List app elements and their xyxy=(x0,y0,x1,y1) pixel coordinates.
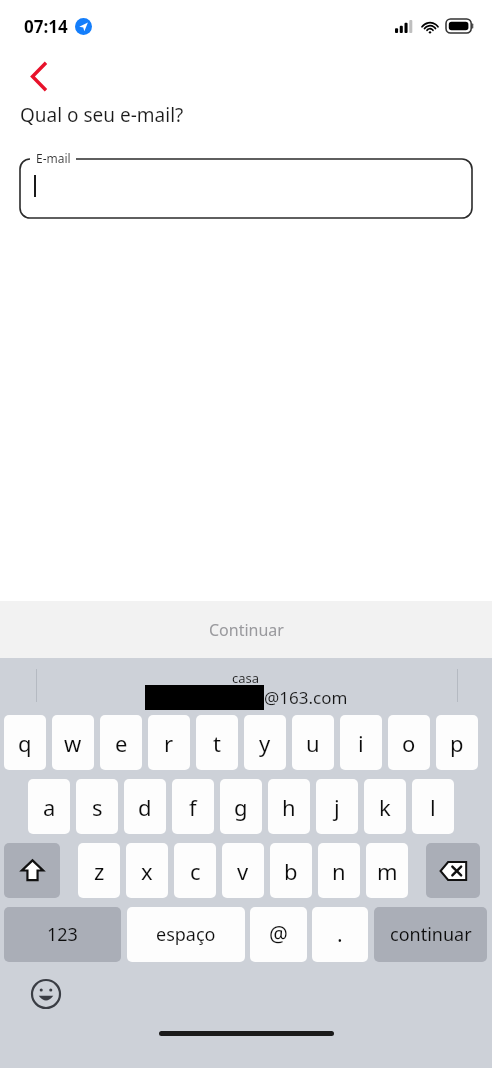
button[interactable]: m xyxy=(366,843,408,898)
button[interactable]: . xyxy=(312,907,368,962)
staticText: n xyxy=(332,856,346,886)
button[interactable]: y xyxy=(244,715,286,770)
staticText: E-mail xyxy=(36,150,71,166)
button[interactable]: t xyxy=(196,715,238,770)
button[interactable]: Shift xyxy=(4,843,60,898)
button[interactable]: z xyxy=(78,843,120,898)
button[interactable]: Emoji xyxy=(24,972,68,1016)
button[interactable]: w xyxy=(52,715,94,770)
button[interactable]: v xyxy=(222,843,264,898)
staticText: 07:14 xyxy=(24,15,68,38)
staticText: w xyxy=(64,728,82,758)
button[interactable]: n xyxy=(318,843,360,898)
button[interactable]: d xyxy=(124,779,166,834)
staticText: k xyxy=(379,792,391,822)
staticText: t xyxy=(213,728,221,758)
staticText: . xyxy=(337,920,343,949)
button[interactable]: Back xyxy=(14,52,62,100)
staticText: r xyxy=(164,728,174,758)
button[interactable]: c xyxy=(174,843,216,898)
staticText: h xyxy=(282,792,296,822)
button[interactable]: i xyxy=(340,715,382,770)
button[interactable]: e xyxy=(100,715,142,770)
button[interactable]: u xyxy=(292,715,334,770)
button[interactable]: @ xyxy=(250,907,307,962)
staticText: v xyxy=(237,856,249,886)
button[interactable]: Backspace xyxy=(426,843,480,898)
staticText: @163.com xyxy=(264,686,348,709)
staticText: 123 xyxy=(47,922,78,947)
staticText: s xyxy=(92,792,103,822)
staticText: a xyxy=(43,792,56,822)
button[interactable]: l xyxy=(412,779,454,834)
button[interactable]: x xyxy=(126,843,168,898)
staticText: @ xyxy=(269,920,288,949)
button[interactable]: Continuar xyxy=(0,601,492,658)
staticText: c xyxy=(190,856,201,886)
staticText: e xyxy=(115,728,128,758)
button[interactable]: casa xyxy=(232,669,260,687)
button[interactable]: espaço xyxy=(127,907,245,962)
staticText: o xyxy=(402,728,416,758)
button[interactable]: r xyxy=(148,715,190,770)
button[interactable]: p xyxy=(436,715,478,770)
staticText: Qual o seu e-mail? xyxy=(20,102,184,128)
button[interactable]: k xyxy=(364,779,406,834)
staticText: q xyxy=(18,728,32,758)
staticText: g xyxy=(234,792,248,822)
staticText: d xyxy=(138,792,152,822)
button[interactable]: o xyxy=(388,715,430,770)
staticText: j xyxy=(334,792,340,822)
staticText: b xyxy=(284,856,298,886)
button[interactable]: s xyxy=(76,779,118,834)
button[interactable]: q xyxy=(4,715,46,770)
staticText: espaço xyxy=(156,922,216,947)
staticText: f xyxy=(189,792,197,822)
button[interactable] xyxy=(20,150,472,218)
button[interactable]: continuar xyxy=(374,907,487,962)
staticText: y xyxy=(259,728,271,758)
staticText: i xyxy=(358,728,364,758)
staticText: p xyxy=(450,728,464,758)
staticText: z xyxy=(94,856,105,886)
button[interactable]: b xyxy=(270,843,312,898)
staticText: x xyxy=(141,856,153,886)
button[interactable]: f xyxy=(172,779,214,834)
staticText: u xyxy=(306,728,320,758)
staticText: m xyxy=(377,856,398,886)
staticText: l xyxy=(430,792,436,822)
button[interactable]: g xyxy=(220,779,262,834)
button[interactable]: @163.com xyxy=(145,685,348,710)
staticText: casa xyxy=(232,669,260,687)
staticText: Continuar xyxy=(209,619,284,641)
staticText: continuar xyxy=(390,922,472,947)
button[interactable]: 123 xyxy=(4,907,121,962)
button[interactable]: h xyxy=(268,779,310,834)
button[interactable]: a xyxy=(28,779,70,834)
button[interactable]: j xyxy=(316,779,358,834)
